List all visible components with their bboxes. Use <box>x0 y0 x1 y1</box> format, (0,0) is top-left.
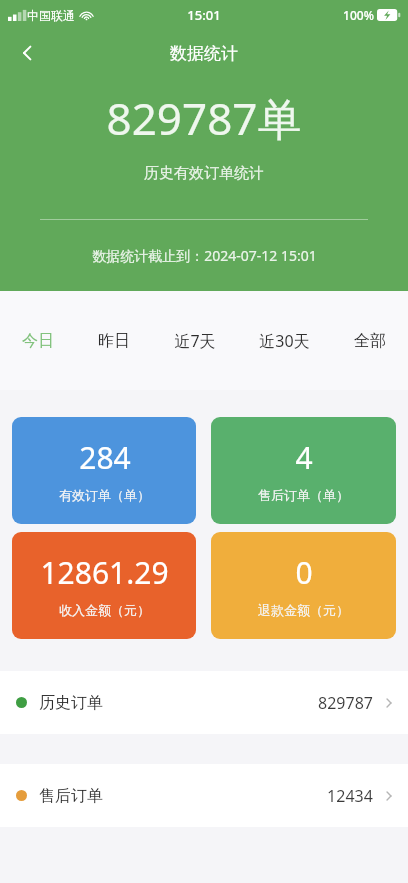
button[interactable]: 今日 <box>14 321 62 361</box>
staticText: 近30天 <box>259 330 310 352</box>
button[interactable]: 返回 <box>8 33 48 73</box>
staticText: 284 <box>79 437 131 478</box>
staticText: 昨日 <box>98 331 130 351</box>
staticText: 有效订单（单） <box>59 487 150 503</box>
staticText: 近7天 <box>174 330 216 352</box>
staticText: 829787 <box>318 692 373 714</box>
staticText: 退款金额（元） <box>258 602 349 618</box>
staticText: 0 <box>295 552 313 593</box>
staticText: 数据统计 <box>170 43 238 64</box>
staticText: 12861.29 <box>40 552 169 593</box>
staticText: 全部 <box>354 331 386 351</box>
staticText: 4 <box>295 437 313 478</box>
button[interactable]: 284 <box>12 417 196 524</box>
staticText: 15:01 <box>187 6 221 24</box>
staticText: 历史有效订单统计 <box>144 164 264 183</box>
staticText: 829787单 <box>106 88 302 148</box>
staticText: 售后订单 <box>39 786 103 806</box>
staticText: 中国联通 <box>27 8 75 23</box>
button[interactable]: 售后订单 <box>0 764 408 827</box>
staticText: 收入金额（元） <box>59 602 150 618</box>
button[interactable]: 12861.29 <box>12 532 196 639</box>
button[interactable]: 昨日 <box>90 321 138 361</box>
staticText: 100% <box>343 7 374 23</box>
staticText: 12434 <box>327 785 373 807</box>
staticText: 历史订单 <box>39 693 103 713</box>
button[interactable]: 全部 <box>346 321 394 361</box>
staticText: 售后订单（单） <box>258 487 349 503</box>
button[interactable]: 0 <box>211 532 396 639</box>
button[interactable]: 近7天 <box>166 320 224 362</box>
staticText: 今日 <box>22 331 54 351</box>
button[interactable]: 近30天 <box>251 320 318 362</box>
button[interactable]: 历史订单 <box>0 671 408 734</box>
button[interactable]: 4 <box>211 417 396 524</box>
staticText: 数据统计截止到：2024-07-12 15:01 <box>92 246 317 265</box>
